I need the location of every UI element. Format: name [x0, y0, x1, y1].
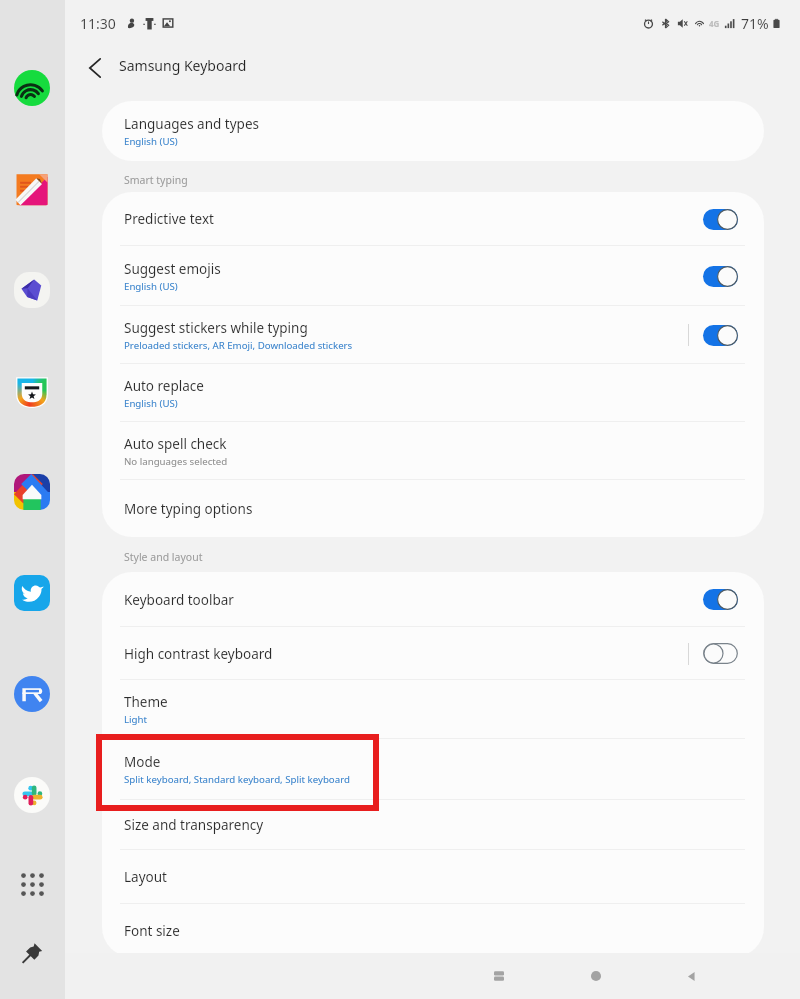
staticText: Languages and types — [124, 115, 259, 133]
button[interactable]: Layout — [102, 850, 764, 904]
staticText: English (US) — [124, 135, 178, 148]
staticText: English (US) — [124, 280, 178, 293]
button[interactable]: Reddit — [14, 676, 50, 712]
button[interactable]: Font size — [102, 904, 764, 957]
button[interactable]: Pin taskbar — [21, 941, 44, 964]
button[interactable]: Google TV — [14, 474, 50, 510]
button[interactable]: Back — [672, 957, 710, 995]
button[interactable]: Suggest emojis — [102, 246, 764, 306]
staticText: 71% — [741, 14, 769, 33]
staticText: Light — [124, 713, 148, 726]
button[interactable]: Recents — [480, 957, 518, 995]
button[interactable]: All apps — [20, 872, 45, 897]
staticText: Auto replace — [124, 377, 204, 395]
staticText: Mode — [124, 753, 161, 771]
staticText: Font size — [124, 922, 180, 940]
button[interactable]: More typing options — [102, 480, 764, 537]
button[interactable]: Toggle on — [703, 266, 738, 287]
staticText: Layout — [124, 868, 167, 886]
button[interactable]: Back — [73, 46, 117, 90]
staticText: Size and transparency — [124, 816, 264, 834]
button[interactable]: ESPN — [14, 373, 50, 409]
button[interactable]: Keyboard toolbar — [102, 572, 764, 627]
staticText: More typing options — [124, 500, 253, 518]
staticText: 4G — [709, 18, 720, 29]
staticText: Keyboard toolbar — [124, 591, 234, 609]
button[interactable]: Gem — [14, 272, 50, 308]
button[interactable]: Auto spell check — [102, 422, 764, 480]
staticText: 11:30 — [80, 14, 116, 33]
staticText: Smart typing — [124, 173, 188, 187]
staticText: Style and layout — [124, 550, 203, 564]
button[interactable]: Spotify — [14, 70, 50, 106]
button[interactable]: Slack — [14, 777, 50, 813]
button[interactable]: Toggle off — [703, 643, 738, 664]
staticText: Theme — [124, 693, 168, 711]
staticText: Split keyboard, Standard keyboard, Split… — [124, 773, 350, 786]
staticText: Auto spell check — [124, 435, 227, 453]
button[interactable]: Toggle on — [703, 209, 738, 230]
button[interactable]: Mode — [102, 739, 764, 800]
staticText: English (US) — [124, 397, 178, 410]
staticText: No languages selected — [124, 455, 228, 468]
button[interactable]: Size and transparency — [102, 800, 764, 850]
staticText: Samsung Keyboard — [119, 56, 247, 75]
staticText: Suggest emojis — [124, 260, 221, 278]
staticText: Predictive text — [124, 210, 214, 228]
button[interactable]: Languages and types — [102, 101, 764, 161]
button[interactable]: Home — [577, 957, 615, 995]
button[interactable]: High contrast keyboard — [102, 627, 764, 680]
button[interactable]: Auto replace — [102, 364, 764, 422]
staticText: Preloaded stickers, AR Emoji, Downloaded… — [124, 339, 353, 352]
button[interactable]: Toggle on — [703, 589, 738, 610]
staticText: High contrast keyboard — [124, 645, 273, 663]
button[interactable]: Samsung Notes — [14, 171, 50, 207]
button[interactable]: Toggle on — [703, 325, 738, 346]
button[interactable]: Theme — [102, 680, 764, 739]
button[interactable]: Twitter — [14, 575, 50, 611]
staticText: Suggest stickers while typing — [124, 319, 308, 337]
button[interactable]: Suggest stickers while typing — [102, 306, 764, 364]
button[interactable]: Predictive text — [102, 192, 764, 246]
